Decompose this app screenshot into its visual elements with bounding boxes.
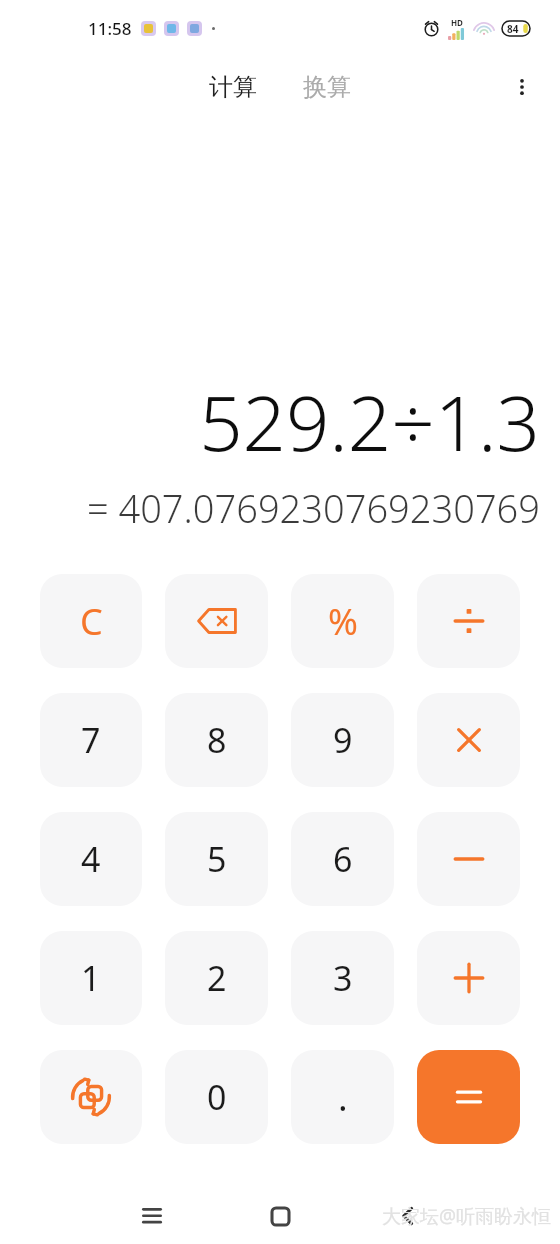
button[interactable]: Multiply (417, 693, 520, 787)
staticText: 6 (333, 836, 353, 882)
button[interactable]: 7 (40, 693, 142, 787)
button[interactable]: Minus (417, 812, 520, 906)
staticText: 5 (207, 836, 227, 882)
button[interactable]: Divide (417, 574, 520, 668)
staticText: HD (451, 17, 463, 28)
staticText: 84 (507, 22, 519, 36)
staticText: 0 (207, 1074, 227, 1120)
button[interactable]: Recent apps (128, 1192, 176, 1240)
button[interactable]: 8 (165, 693, 268, 787)
button[interactable]: 5 (165, 812, 268, 906)
staticText: 7 (81, 717, 101, 763)
staticText: . (338, 1073, 348, 1122)
staticText: 换算 (303, 72, 351, 102)
staticText: 4 (81, 836, 101, 882)
button[interactable]: 2 (165, 931, 268, 1025)
button[interactable]: 0 (165, 1050, 268, 1144)
button[interactable]: Back (384, 1192, 432, 1240)
staticText: 529.2÷1.3 (199, 370, 540, 474)
button[interactable]: . (291, 1050, 394, 1144)
button[interactable]: % (291, 574, 394, 668)
button[interactable]: More options (498, 63, 546, 111)
staticText: C (80, 597, 103, 646)
staticText: % (328, 597, 358, 646)
button[interactable]: 计算 (199, 66, 267, 108)
staticText: 9 (333, 717, 353, 763)
staticText: 计算 (209, 72, 257, 102)
staticText: 2 (207, 955, 227, 1001)
staticText: 3 (333, 955, 353, 1001)
staticText: 大家坛@听雨盼永恒 (382, 1203, 552, 1229)
button[interactable]: 3 (291, 931, 394, 1025)
button[interactable]: 6 (291, 812, 394, 906)
button[interactable]: Equals (417, 1050, 520, 1144)
button[interactable]: 换算 (293, 66, 361, 108)
button[interactable]: 1 (40, 931, 142, 1025)
button[interactable]: Home (256, 1192, 304, 1240)
button[interactable]: Plus (417, 931, 520, 1025)
button[interactable]: 9 (291, 693, 394, 787)
staticText: = 407.0769230769230769 (86, 482, 540, 534)
button[interactable]: C (40, 574, 142, 668)
button[interactable]: Convert (40, 1050, 142, 1144)
button[interactable]: 4 (40, 812, 142, 906)
staticText: 1 (81, 955, 101, 1001)
button[interactable]: Backspace (165, 574, 268, 668)
staticText: 11:58 (88, 17, 132, 40)
staticText: 8 (207, 717, 227, 763)
